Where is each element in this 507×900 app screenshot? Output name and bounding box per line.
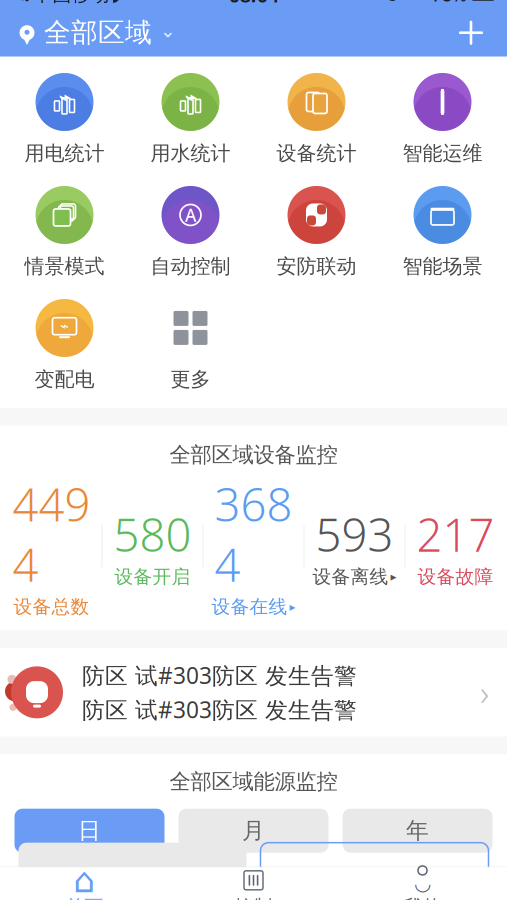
staticText: 安防联动: [276, 254, 356, 278]
staticText: 设备总数: [13, 595, 89, 618]
staticText: ◡: [414, 872, 431, 895]
button[interactable]: A: [127, 180, 253, 285]
staticText: A: [185, 203, 196, 226]
button[interactable]: 情景模式: [1, 180, 127, 285]
staticText: ▸: [289, 600, 295, 614]
staticText: 防区 试#303防区 发生告警: [82, 660, 357, 690]
staticText: ⌄: [160, 20, 176, 41]
button[interactable]: ⌁: [1, 67, 127, 172]
staticText: 全部区域: [44, 16, 152, 49]
button[interactable]: 智能运维: [379, 67, 505, 172]
button[interactable]: ⌂: [0, 867, 169, 900]
staticText: ▸: [390, 570, 396, 583]
staticText: 217: [416, 504, 494, 564]
staticText: 月: [242, 817, 265, 844]
button[interactable]: ◡: [338, 867, 507, 900]
staticText: 日: [78, 817, 101, 844]
staticText: 设备故障: [417, 565, 493, 588]
staticText: 78%: [432, 0, 467, 6]
staticText: 我的: [403, 895, 441, 900]
staticText: ⌂: [73, 861, 95, 900]
button[interactable]: 月: [178, 809, 328, 853]
staticText: 防区 试#303防区 发生告警: [82, 694, 357, 724]
button[interactable]: 日: [14, 809, 164, 853]
button[interactable]: ▾: [14, 11, 180, 55]
staticText: 全部区域能源监控: [169, 768, 337, 795]
button[interactable]: 智能场景: [379, 180, 505, 285]
staticText: 情景模式: [24, 254, 104, 278]
button[interactable]: 防区 试#303防区 发生告警: [0, 648, 507, 736]
button[interactable]: 设备统计: [253, 67, 379, 172]
button[interactable]: 安防联动: [253, 180, 379, 285]
staticText: 3684: [214, 474, 292, 594]
staticText: 智能场景: [402, 254, 482, 278]
staticText: 用电统计: [24, 141, 104, 165]
button[interactable]: 年: [342, 809, 492, 853]
staticText: 4494: [12, 474, 90, 594]
button[interactable]: ⌁: [127, 67, 253, 172]
staticText: ⌁: [184, 84, 198, 110]
staticText: 变配电: [34, 367, 94, 391]
staticText: ⌁: [60, 318, 69, 334]
staticText: 设备在线: [211, 595, 287, 618]
staticText: 设备离线: [312, 565, 388, 588]
staticText: 用水统计: [150, 141, 230, 165]
staticText: 自动控制: [150, 254, 230, 278]
staticText: 首页: [65, 895, 103, 900]
staticText: 580: [113, 504, 191, 564]
button[interactable]: 更多: [127, 293, 253, 398]
button[interactable]: 添加: [449, 11, 493, 55]
staticText: 控制: [234, 895, 272, 900]
button[interactable]: ⌁: [1, 293, 127, 398]
staticText: 设备统计: [276, 141, 356, 165]
staticText: 593: [315, 504, 393, 564]
staticText: 智能运维: [402, 141, 482, 165]
staticText: 更多: [170, 367, 210, 391]
staticText: 中国移动: [33, 0, 109, 6]
staticText: ◗: [111, 0, 120, 5]
staticText: 设备开启: [114, 565, 190, 588]
staticText: ›: [480, 669, 489, 715]
staticText: ⌁: [58, 84, 72, 110]
staticText: 08:04: [229, 0, 279, 8]
staticText: 全部区域设备监控: [169, 442, 337, 468]
button[interactable]: 控制: [169, 867, 338, 900]
staticText: 年: [406, 817, 429, 844]
staticText: ▾: [22, 29, 31, 49]
